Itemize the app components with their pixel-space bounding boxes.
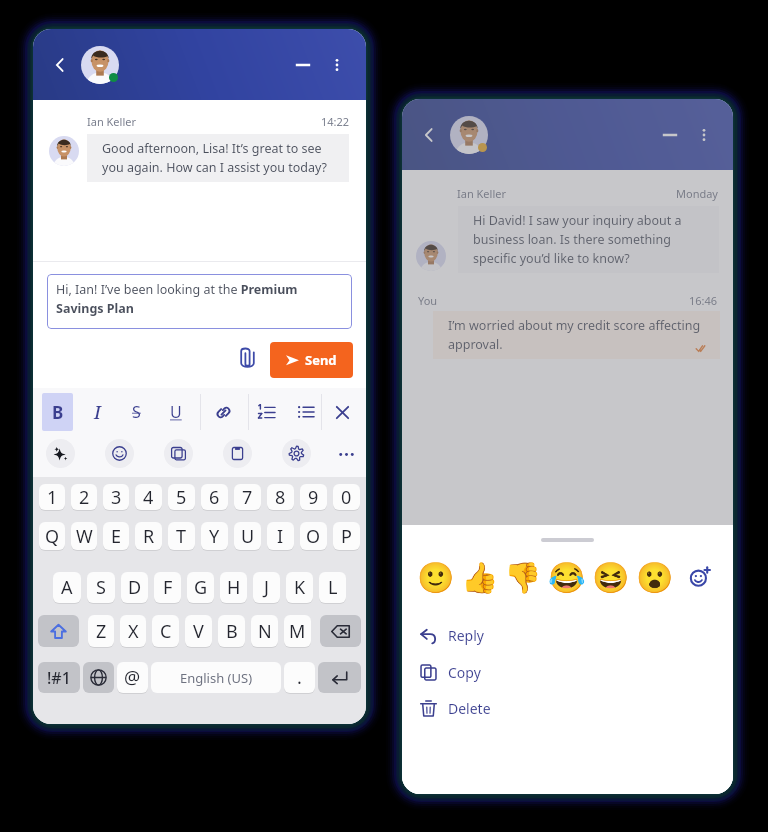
button[interactable]: H xyxy=(220,572,247,603)
staticText: Delete xyxy=(448,699,491,718)
button[interactable]: O xyxy=(300,522,327,550)
button[interactable]: Delete xyxy=(402,693,733,723)
staticText: 16:46 xyxy=(689,293,718,308)
button[interactable]: 7 xyxy=(234,484,261,510)
button[interactable]: 6 xyxy=(201,484,228,510)
button[interactable]: More options xyxy=(326,54,348,76)
button[interactable]: Backspace xyxy=(320,615,361,647)
button[interactable]: Numbered list xyxy=(247,393,285,431)
button[interactable]: Clipboard xyxy=(223,439,252,468)
button[interactable]: C xyxy=(152,615,179,647)
button[interactable]: Settings xyxy=(282,439,311,468)
button[interactable]: 👍 xyxy=(461,558,499,596)
staticText: I xyxy=(277,524,284,549)
button[interactable]: Enter xyxy=(318,662,361,693)
button[interactable]: S xyxy=(87,572,115,603)
button[interactable]: 😮 xyxy=(636,558,674,596)
button[interactable]: Hi, Ian! I’ve been looking at the Premiu… xyxy=(47,274,352,329)
button[interactable]: P xyxy=(333,522,360,550)
button[interactable]: 1 xyxy=(39,484,65,510)
button[interactable]: English (US) xyxy=(151,662,281,693)
button[interactable]: . xyxy=(284,662,315,693)
staticText: C xyxy=(160,619,172,644)
staticText: 2 xyxy=(79,485,90,510)
button[interactable]: Bulleted list xyxy=(287,393,325,431)
button[interactable]: S xyxy=(117,393,155,431)
button[interactable]: 2 xyxy=(71,484,97,510)
button[interactable]: 9 xyxy=(300,484,327,510)
button[interactable]: E xyxy=(103,522,129,550)
button[interactable]: 😆 xyxy=(592,558,630,596)
button[interactable]: 5 xyxy=(168,484,195,510)
button[interactable]: Insert link xyxy=(204,393,242,431)
button[interactable]: Q xyxy=(39,522,65,550)
button[interactable]: Reply xyxy=(402,620,733,650)
button[interactable]: Y xyxy=(201,522,228,550)
button[interactable]: 3 xyxy=(103,484,129,510)
button[interactable]: 😂 xyxy=(548,558,586,596)
staticText: Ian Keller xyxy=(457,186,506,201)
staticText: 8 xyxy=(275,485,286,510)
button[interactable]: Good afternoon, Lisa! It’s great to see … xyxy=(87,134,349,182)
staticText: T xyxy=(176,524,187,549)
button[interactable]: R xyxy=(135,522,162,550)
button[interactable]: 0 xyxy=(333,484,360,510)
button[interactable]: Back xyxy=(47,52,73,78)
button[interactable]: G xyxy=(187,572,214,603)
button[interactable]: D xyxy=(121,572,148,603)
button[interactable]: B xyxy=(218,615,245,647)
button[interactable]: Attach file xyxy=(237,347,258,369)
button[interactable]: F xyxy=(154,572,181,603)
button[interactable]: Z xyxy=(88,615,114,647)
button[interactable]: I xyxy=(267,522,294,550)
button[interactable]: X xyxy=(120,615,146,647)
staticText: D xyxy=(128,575,142,600)
button[interactable]: I xyxy=(78,393,116,431)
staticText: 3 xyxy=(111,485,122,510)
button[interactable]: Bold xyxy=(42,393,73,431)
button[interactable]: U xyxy=(234,522,261,550)
button[interactable]: T xyxy=(168,522,195,550)
button[interactable]: 8 xyxy=(267,484,294,510)
button[interactable]: N xyxy=(251,615,278,647)
staticText: Hi, Ian! I’ve been looking at the Premiu… xyxy=(56,281,343,317)
button[interactable]: @ xyxy=(117,662,148,693)
button[interactable]: More options xyxy=(693,124,715,146)
button[interactable]: W xyxy=(71,522,97,550)
button[interactable]: A xyxy=(53,572,81,603)
button[interactable]: Send xyxy=(270,342,353,378)
staticText: E xyxy=(111,524,122,549)
button[interactable]: Copy xyxy=(402,657,733,687)
button[interactable]: V xyxy=(185,615,212,647)
button[interactable]: Minimize xyxy=(292,54,314,76)
staticText: O xyxy=(306,524,321,549)
button[interactable]: Close formatting xyxy=(323,393,361,431)
staticText: P xyxy=(341,524,352,549)
staticText: 7 xyxy=(242,485,253,510)
button[interactable]: Symbols xyxy=(38,662,80,693)
button[interactable]: 🙂 xyxy=(417,558,455,596)
button[interactable]: L xyxy=(319,572,346,603)
button[interactable]: Image xyxy=(164,439,193,468)
button[interactable]: J xyxy=(253,572,280,603)
button[interactable]: Shift xyxy=(38,615,79,647)
staticText: V xyxy=(193,619,204,644)
button[interactable]: K xyxy=(286,572,313,603)
button[interactable]: Hi David! I saw your inquiry about a bus… xyxy=(458,206,719,273)
button[interactable]: 👎 xyxy=(504,558,542,596)
button[interactable]: 4 xyxy=(135,484,162,510)
button[interactable]: Add reaction xyxy=(687,563,713,589)
button[interactable]: AI assist xyxy=(46,439,75,468)
button[interactable]: U xyxy=(157,393,195,431)
button[interactable]: Minimize xyxy=(659,124,681,146)
button[interactable]: Emoji xyxy=(105,439,134,468)
button[interactable]: Back xyxy=(416,122,442,148)
button[interactable]: I’m worried about my credit score affect… xyxy=(433,311,720,359)
button[interactable]: Change language xyxy=(83,662,114,693)
staticText: Ian Keller xyxy=(87,114,136,129)
button[interactable]: More xyxy=(332,440,360,468)
staticText: 😮 xyxy=(636,560,674,595)
button[interactable]: M xyxy=(284,615,311,647)
staticText: B xyxy=(226,619,238,644)
staticText: 👍 xyxy=(461,560,499,595)
